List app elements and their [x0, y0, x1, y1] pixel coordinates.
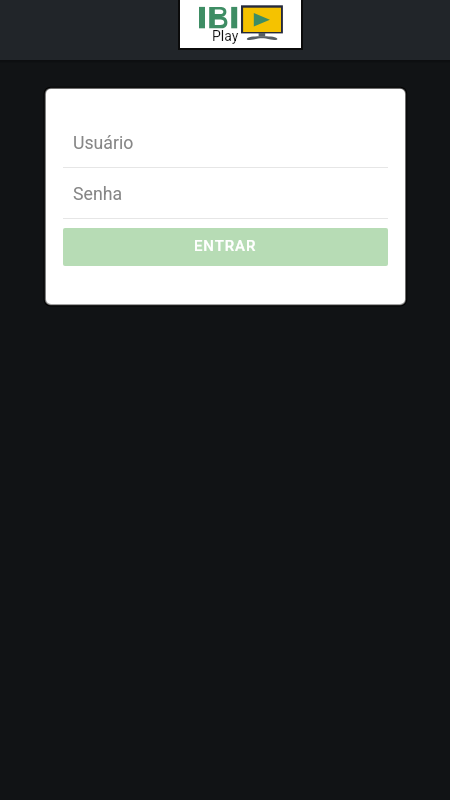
staticText: Senha: [73, 184, 123, 205]
staticText: Play: [212, 28, 239, 44]
staticText: ENTRAR: [194, 237, 257, 255]
other: IBI Play logo: [180, 0, 301, 48]
button[interactable]: Usuário: [63, 120, 388, 168]
button[interactable]: Senha: [63, 171, 388, 219]
staticText: Usuário: [73, 133, 134, 154]
button[interactable]: ENTRAR: [63, 228, 388, 266]
